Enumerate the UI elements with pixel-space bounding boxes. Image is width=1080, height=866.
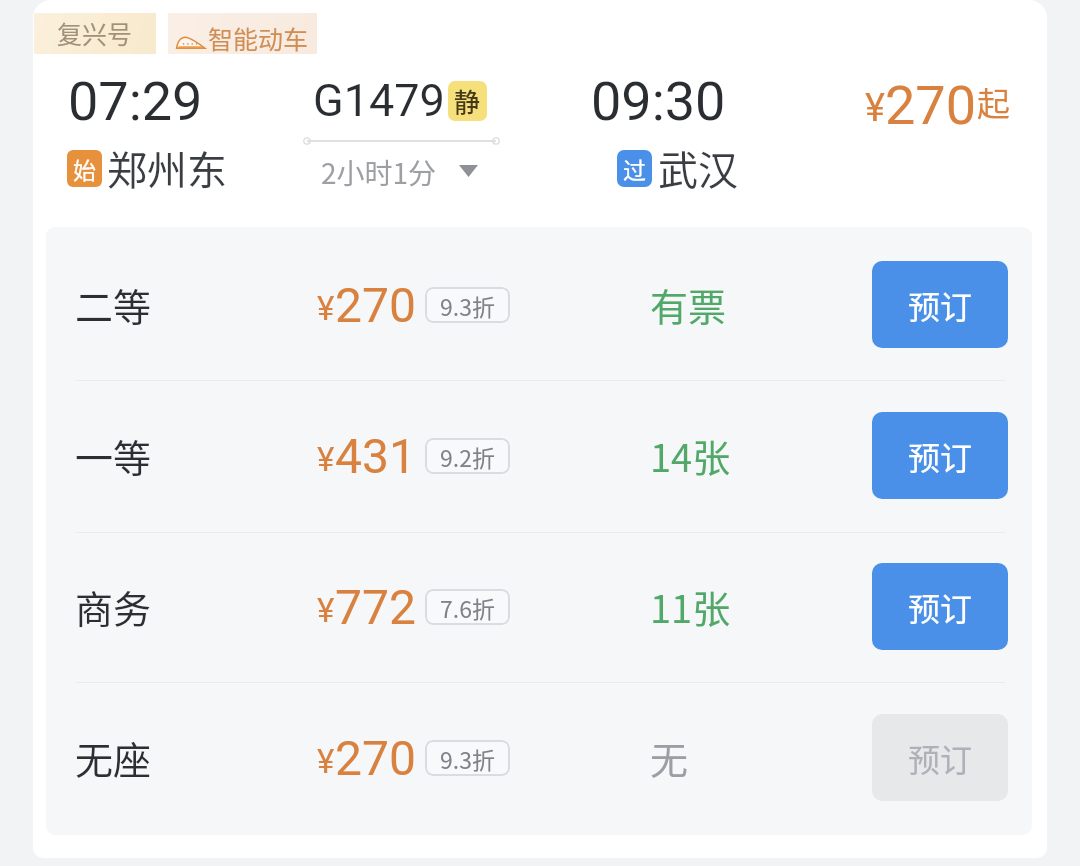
button[interactable]: 预订 <box>872 563 1008 650</box>
button[interactable]: 一等 <box>46 378 1032 529</box>
staticText: ¥ <box>317 440 335 479</box>
staticText: ¥ <box>317 742 335 781</box>
staticText: 预订 <box>908 584 973 630</box>
staticText: 预订 <box>908 735 973 781</box>
staticText: 预订 <box>908 282 973 328</box>
button[interactable]: 复兴号 <box>33 0 1047 227</box>
staticText: 11张 <box>650 579 731 634</box>
staticText: ¥ <box>317 591 335 630</box>
staticText: 无 <box>650 730 689 785</box>
staticText: 一等 <box>75 428 152 483</box>
staticText: 商务 <box>75 579 152 634</box>
staticText: 智能动车 <box>208 20 309 56</box>
button[interactable]: 二等 <box>46 227 1032 378</box>
staticText: 无座 <box>75 730 152 785</box>
staticText: 270 <box>885 74 977 137</box>
staticText: 郑州东 <box>107 139 227 197</box>
staticText: 9.2折 <box>440 440 495 473</box>
staticText: 始 <box>73 152 96 185</box>
staticText: 武汉 <box>658 139 738 197</box>
staticText: 预订 <box>908 433 973 479</box>
button[interactable]: 2小时1分 <box>321 152 478 190</box>
button[interactable]: 商务 <box>46 529 1032 680</box>
staticText: ¥ <box>865 86 885 131</box>
staticText: 270 <box>335 277 416 333</box>
staticText: 772 <box>335 579 416 635</box>
staticText: 9.3折 <box>440 742 495 775</box>
staticText: 09:30 <box>591 70 726 133</box>
staticText: 有票 <box>650 277 727 332</box>
staticText: 静 <box>454 82 481 120</box>
staticText: 二等 <box>75 277 152 332</box>
staticText: 2小时1分 <box>321 152 437 190</box>
staticText: 过 <box>623 152 646 185</box>
button: 预订 <box>872 714 1008 801</box>
staticText: 复兴号 <box>57 15 133 51</box>
staticText: 07:29 <box>68 70 203 133</box>
staticText: 9.3折 <box>440 289 495 322</box>
staticText: 起 <box>977 78 1010 126</box>
button[interactable]: 无座 <box>46 680 1032 831</box>
button[interactable]: 预订 <box>872 261 1008 348</box>
staticText: 14张 <box>650 428 731 483</box>
other: Smart high-speed train <box>176 34 205 49</box>
staticText: 270 <box>335 730 416 786</box>
staticText: G1479 <box>313 74 445 127</box>
staticText: ¥ <box>317 289 335 328</box>
staticText: 7.6折 <box>440 591 495 624</box>
staticText: 431 <box>335 428 416 484</box>
button[interactable]: 预订 <box>872 412 1008 499</box>
